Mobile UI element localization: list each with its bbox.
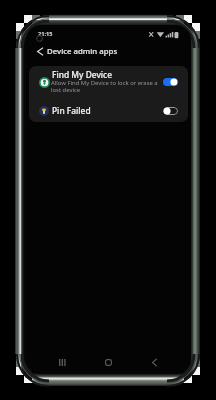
button[interactable]: Toggle on [163,78,178,86]
button[interactable]: Back [32,41,48,61]
staticText: Allow Find My Device to lock or erase a … [51,79,158,94]
button[interactable]: Toggle off [163,107,178,115]
staticText: 21:15 [38,30,53,38]
button[interactable]: Home [85,350,131,374]
staticText: Pin Failed [52,105,91,116]
staticText: Device admin apps [47,46,118,57]
staticText: Find My Device [52,69,113,80]
button[interactable]: Pin Failed [29,97,188,122]
button[interactable]: Back [131,350,177,374]
button[interactable]: Recent apps [40,350,85,374]
button[interactable]: Find My Device [29,66,188,97]
